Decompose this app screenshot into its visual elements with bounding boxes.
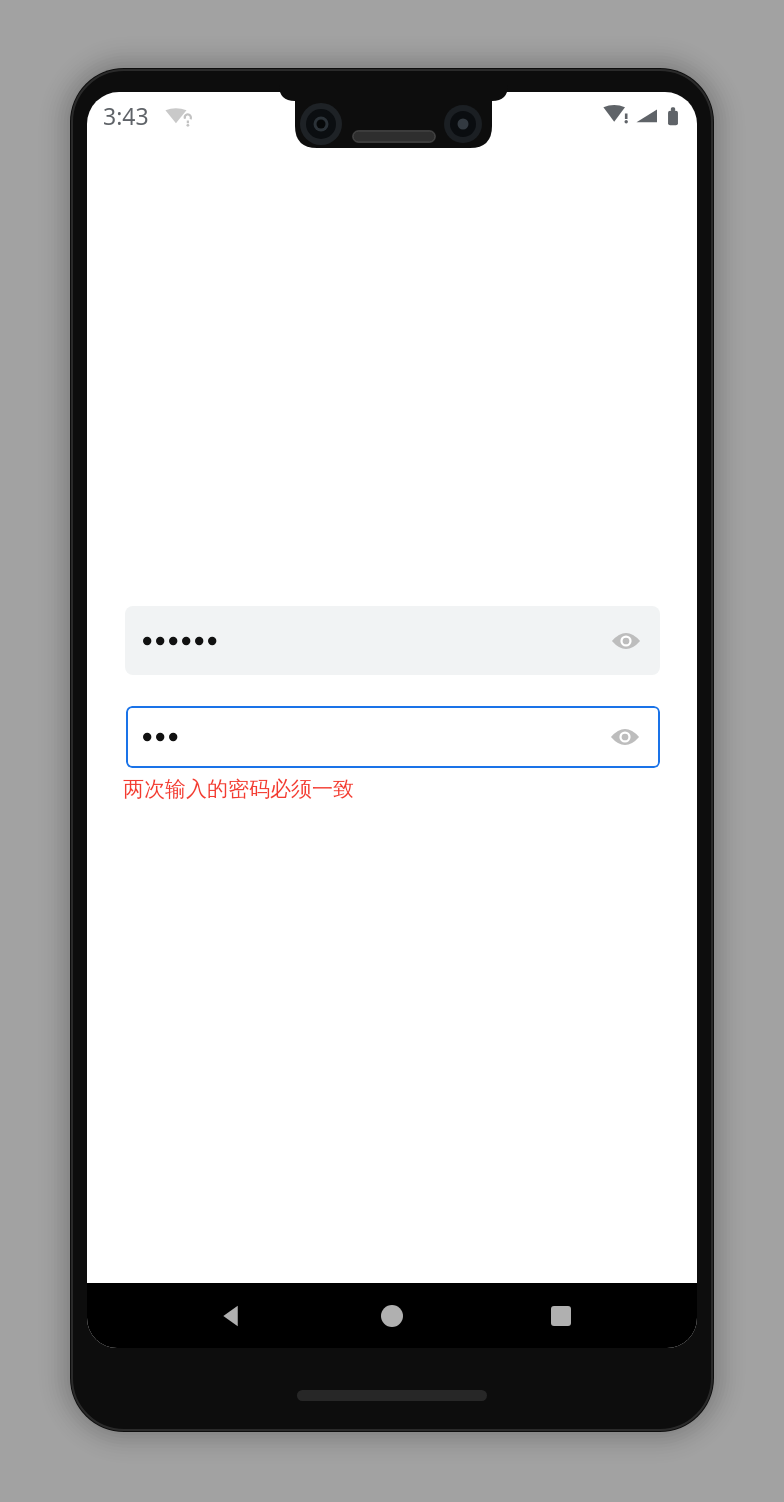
button[interactable]: Recent apps — [525, 1283, 597, 1348]
button[interactable]: Toggle password visibility — [126, 706, 660, 768]
button[interactable]: Back — [195, 1283, 267, 1348]
staticText: 3:43 — [103, 100, 149, 131]
button[interactable]: Toggle password visibility — [125, 606, 660, 675]
button[interactable]: Home — [356, 1283, 428, 1348]
button[interactable]: Toggle password visibility — [601, 713, 649, 761]
button[interactable]: Toggle password visibility — [602, 617, 650, 665]
staticText: 两次输入的密码必须一致 — [123, 776, 354, 802]
